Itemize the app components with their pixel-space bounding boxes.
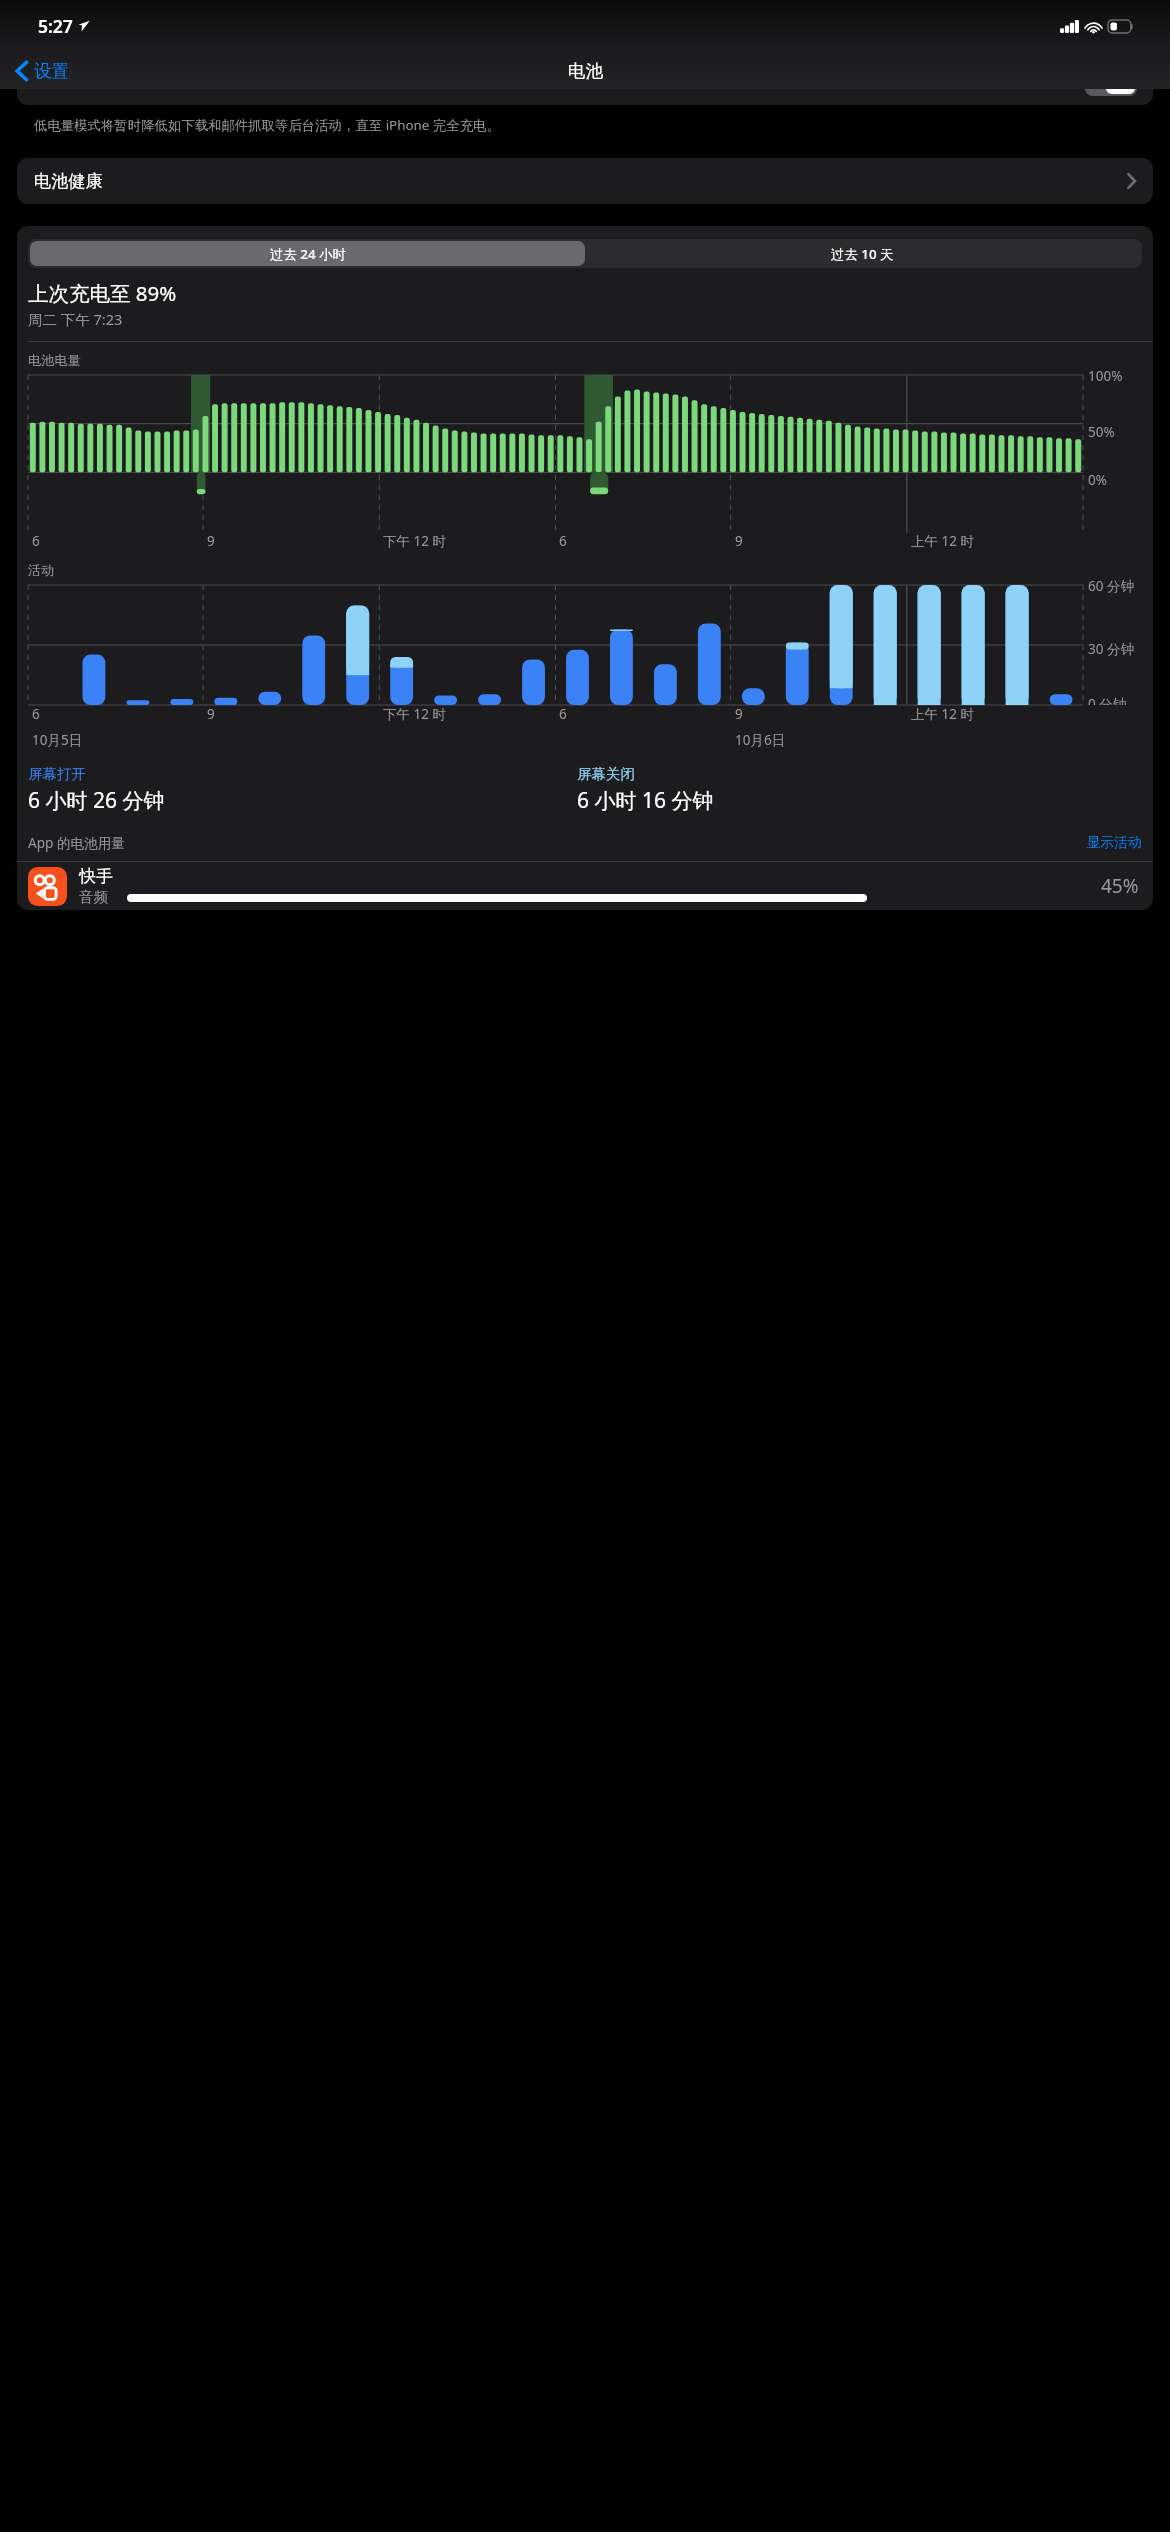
staticText: 下午 12 时 bbox=[383, 532, 446, 550]
staticText: 6 小时 16 分钟 bbox=[577, 786, 714, 815]
staticText: 100% bbox=[1088, 367, 1123, 385]
staticText: 下午 12 时 bbox=[383, 705, 446, 723]
staticText: 9 bbox=[735, 532, 743, 550]
button[interactable]: 显示活动 bbox=[1087, 834, 1142, 851]
staticText: 5:27 bbox=[38, 14, 73, 38]
staticText: 6 bbox=[32, 532, 40, 550]
staticText: 上次充电至 89% bbox=[28, 279, 177, 307]
staticText: 音频 bbox=[79, 888, 108, 906]
staticText: 设置 bbox=[34, 60, 69, 82]
staticText: App 的电池用量 bbox=[28, 833, 125, 852]
button[interactable]: 过去 10 天 bbox=[585, 241, 1140, 266]
staticText: 活动 bbox=[28, 562, 55, 579]
staticText: 电池电量 bbox=[28, 352, 81, 369]
staticText: 周二 下午 7:23 bbox=[28, 309, 123, 329]
staticText: 9 bbox=[207, 705, 215, 723]
staticText: 30 分钟 bbox=[1088, 640, 1134, 658]
staticText: 上午 12 时 bbox=[911, 705, 974, 723]
staticText: 电池健康 bbox=[34, 170, 103, 192]
staticText: 45% bbox=[1101, 873, 1139, 899]
button[interactable]: 快手 bbox=[17, 862, 1153, 910]
staticText: 过去 10 天 bbox=[831, 245, 894, 263]
staticText: 0% bbox=[1088, 471, 1107, 489]
staticText: 屏幕关闭 bbox=[577, 765, 635, 783]
staticText: 60 分钟 bbox=[1088, 577, 1134, 595]
staticText: 快手 bbox=[79, 866, 113, 887]
button[interactable]: 过去 24 小时 bbox=[30, 241, 585, 266]
button[interactable]: 设置 bbox=[10, 58, 75, 84]
button[interactable]: 电池健康 bbox=[17, 158, 1153, 204]
staticText: 0 分钟 bbox=[1088, 695, 1127, 705]
button[interactable] bbox=[17, 89, 1153, 105]
staticText: 9 bbox=[207, 532, 215, 550]
staticText: 6 bbox=[32, 705, 40, 723]
staticText: 低电量模式将暂时降低如下载和邮件抓取等后台活动，直至 iPhone 完全充电。 bbox=[34, 116, 500, 134]
staticText: 50% bbox=[1088, 423, 1115, 441]
staticText: 显示活动 bbox=[1087, 834, 1142, 851]
staticText: 上午 12 时 bbox=[911, 532, 974, 550]
staticText: 过去 24 小时 bbox=[270, 245, 346, 263]
staticText: 6 小时 26 分钟 bbox=[28, 786, 165, 815]
staticText: 屏幕打开 bbox=[28, 765, 86, 783]
staticText: 6 bbox=[559, 532, 567, 550]
staticText: 电池 bbox=[568, 60, 603, 82]
staticText: 6 bbox=[559, 705, 567, 723]
staticText: 9 bbox=[735, 705, 743, 723]
staticText: 10月5日 bbox=[32, 731, 83, 749]
staticText: 10月6日 bbox=[735, 731, 786, 749]
